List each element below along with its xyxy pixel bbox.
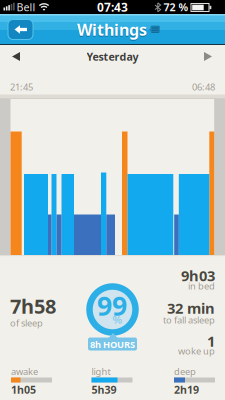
staticText: 8h HOURS [90,338,135,351]
button[interactable] [8,19,33,39]
staticText: 99 [97,288,127,323]
staticText: 5h39 [91,382,116,397]
staticText: to fall asleep [163,314,215,326]
staticText: Bell [16,0,35,14]
staticText: Withings [77,19,147,40]
staticText: Yesterday [86,49,138,64]
staticText: 06:48 [192,81,215,93]
button[interactable] [204,52,212,61]
staticText: 9h03 [181,266,215,285]
staticText: Withings [77,20,147,41]
staticText: % [112,312,122,327]
staticText: 07:43 [97,0,128,15]
staticText: 72 % [163,0,188,14]
staticText: light [91,365,110,378]
staticText: 2h19 [174,382,199,397]
staticText: 21:45 [10,81,33,93]
staticText: 7h58 [10,293,56,319]
staticText: woke up [178,345,215,357]
staticText: awake [11,365,38,378]
button[interactable] [150,26,160,33]
staticText: of sleep [10,317,43,329]
button[interactable] [12,52,20,61]
staticText: in bed [188,280,215,292]
staticText: 1h05 [11,382,36,397]
staticText: 1 [207,331,215,351]
staticText: 32 min [167,298,215,318]
staticText: deep [174,365,196,378]
